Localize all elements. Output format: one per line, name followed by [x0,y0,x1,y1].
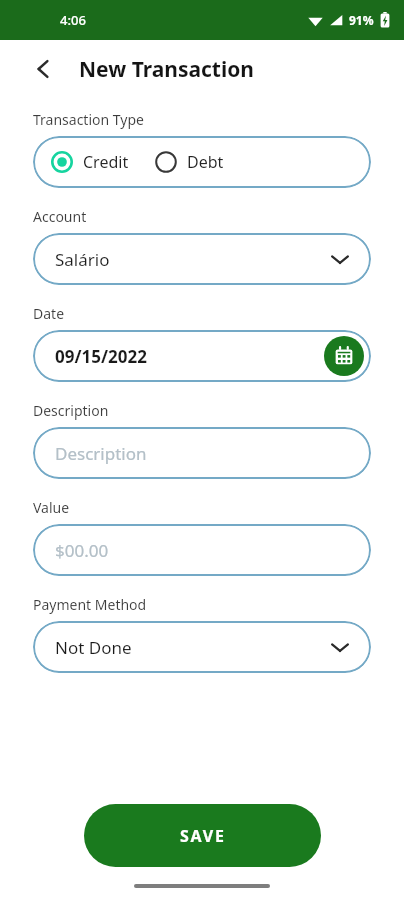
staticText: Value [33,498,70,517]
staticText: Debt [187,151,224,173]
button[interactable]: SAVE [84,804,321,867]
staticText: New Transaction [79,55,255,84]
staticText: Credit [83,151,129,173]
staticText: Salário [55,248,329,271]
button[interactable]: Not Done [33,621,371,673]
button[interactable]: Pick date [324,336,364,376]
button[interactable]: $00.00 [33,524,371,576]
staticText: Account [33,207,87,226]
button[interactable]: Salário [33,233,371,285]
staticText: Transaction Type [33,110,144,129]
staticText: SAVE [180,825,226,847]
staticText: Date [33,304,65,323]
staticText: Description [33,401,109,420]
staticText: 4:06 [60,11,86,29]
button[interactable]: Credit [51,151,129,173]
staticText: $00.00 [55,539,109,562]
button[interactable]: Description [33,427,371,479]
staticText: 91% [349,12,374,28]
button[interactable]: Debt [155,151,224,173]
staticText: Not Done [55,636,329,659]
button[interactable]: Back [22,48,64,90]
staticText: Payment Method [33,595,147,614]
staticText: 09/15/2022 [55,345,324,368]
staticText: Description [55,442,147,465]
